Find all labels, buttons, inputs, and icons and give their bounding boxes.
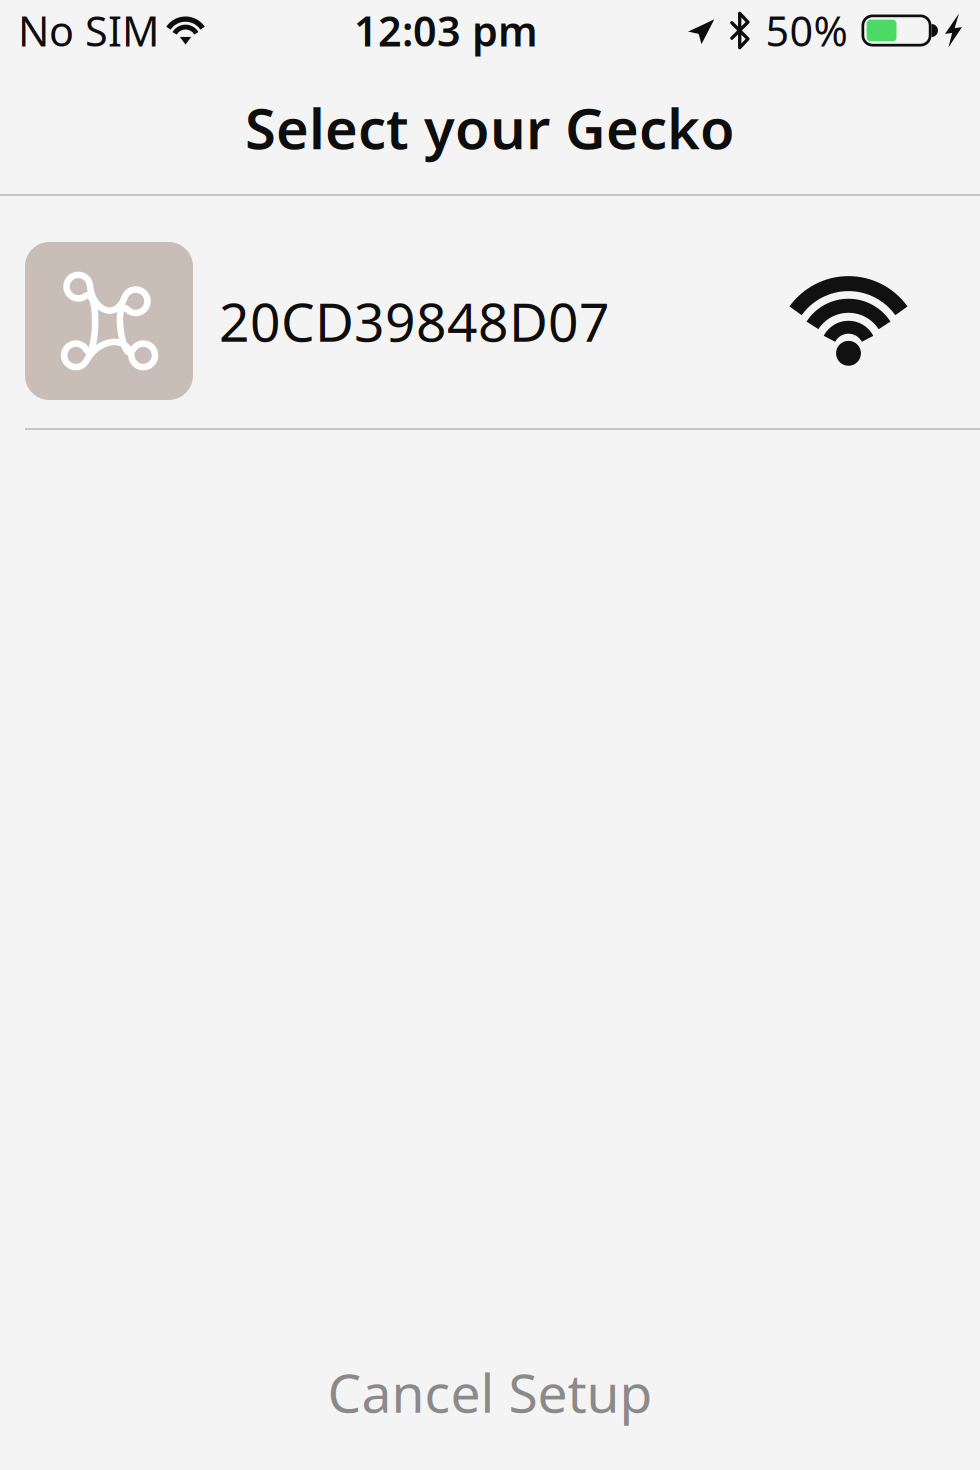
staticText: Cancel Setup: [327, 1357, 652, 1427]
staticText: 50%: [765, 3, 847, 58]
button[interactable]: Cancel Setup: [0, 1344, 980, 1440]
staticText: 12:03 pm: [354, 3, 538, 58]
staticText: No SIM: [18, 3, 159, 58]
button[interactable]: 20CD39848D07: [0, 196, 980, 428]
staticText: Select your Gecko: [245, 90, 735, 165]
staticText: 20CD39848D07: [219, 286, 610, 356]
